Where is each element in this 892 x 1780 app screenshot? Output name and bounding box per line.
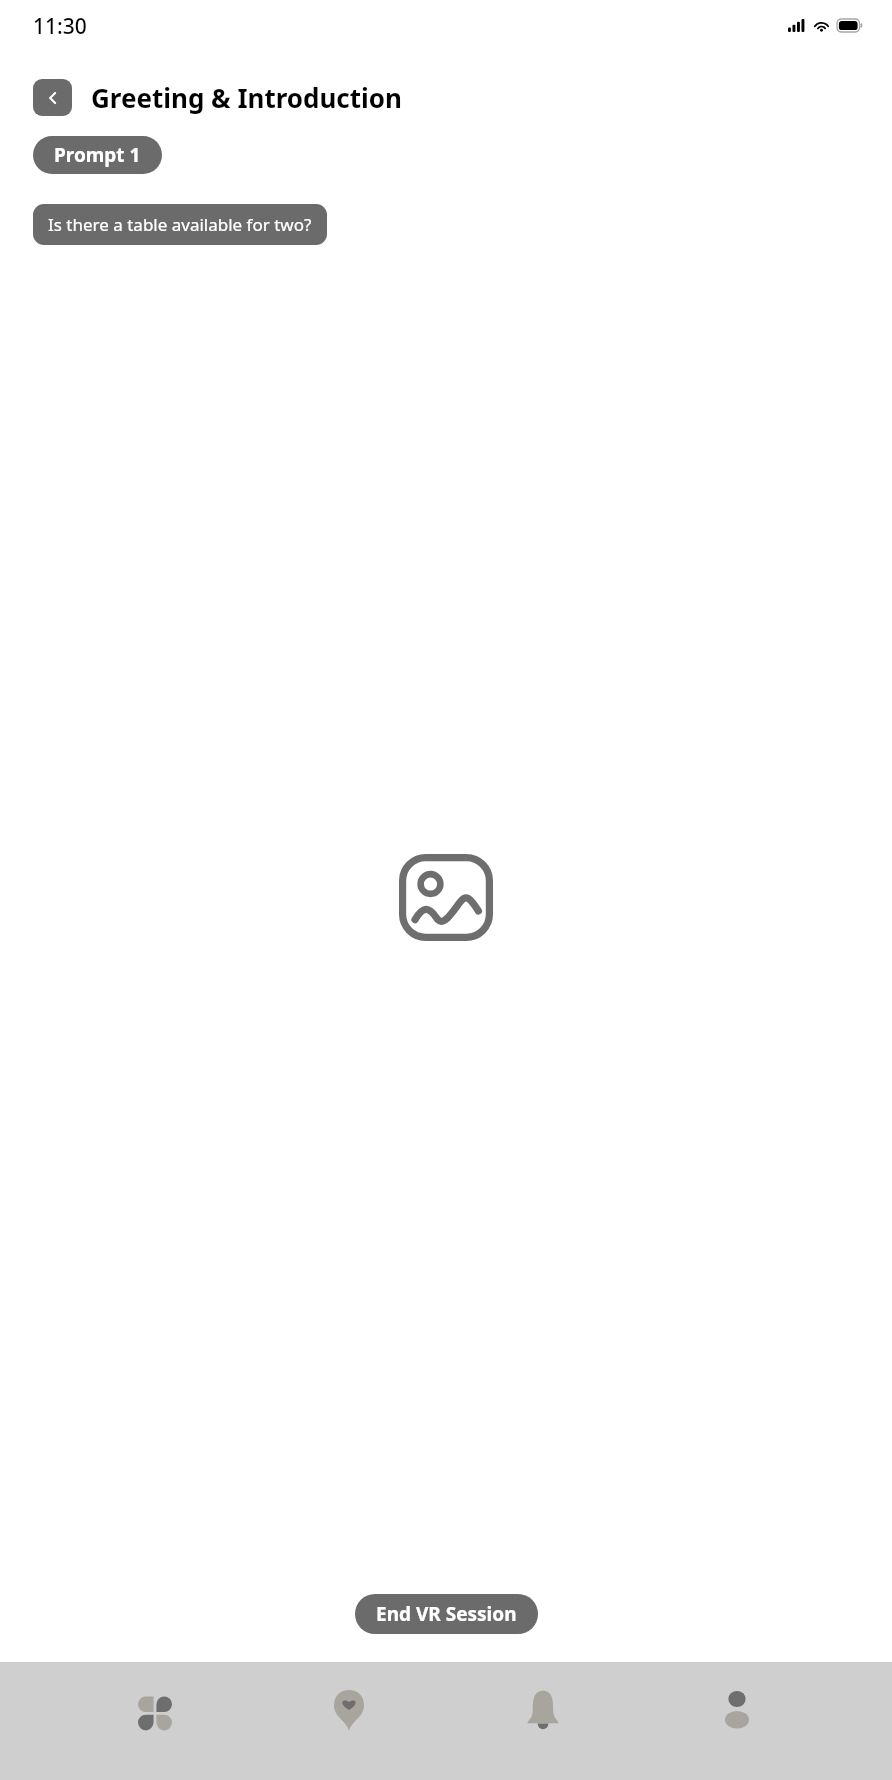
button[interactable]: Favorites bbox=[310, 1682, 388, 1740]
staticText: Greeting & Introduction bbox=[91, 80, 402, 115]
button[interactable]: End VR Session bbox=[355, 1594, 538, 1634]
staticText: Prompt 1 bbox=[54, 142, 141, 168]
button[interactable]: Back bbox=[33, 79, 72, 116]
button[interactable]: Notifications bbox=[504, 1682, 582, 1740]
button[interactable]: Profile bbox=[698, 1682, 776, 1740]
staticText: End VR Session bbox=[376, 1601, 517, 1627]
button[interactable]: Is there a table available for two? bbox=[33, 204, 327, 245]
button[interactable]: Prompt 1 bbox=[33, 136, 162, 174]
staticText: 11:30 bbox=[33, 12, 87, 41]
button[interactable]: Dashboard bbox=[116, 1682, 194, 1740]
staticText: Is there a table available for two? bbox=[48, 213, 312, 236]
